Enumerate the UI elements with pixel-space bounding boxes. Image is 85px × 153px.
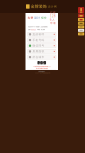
button[interactable]: Offer (78, 14, 84, 17)
staticText: 已服务 (27, 29, 30, 30)
staticText: 查看装修案例 > (38, 70, 45, 72)
button[interactable]: Promotion banner (78, 7, 84, 14)
staticText: * 我们承诺您的信息将被严格保密，仅 (33, 66, 50, 67)
staticText: 86,420 (31, 29, 36, 30)
staticText: 户家庭，省心省钱 (37, 29, 45, 30)
staticText: 报价 (41, 16, 47, 20)
staticText: 所在城市 (32, 55, 44, 59)
staticText: 微信同号 (32, 44, 44, 47)
staticText: 设计 (34, 16, 40, 20)
staticText: 您的称呼 (32, 33, 44, 36)
button[interactable]: 手机号码 (27, 38, 56, 42)
staticText: 免费申请 (39, 59, 45, 66)
staticText: 用于本次免费设计报价服务 (36, 68, 48, 69)
button[interactable]: Coupon (78, 18, 84, 21)
button[interactable]: Gift (78, 22, 84, 25)
staticText: 设计网 (48, 5, 57, 8)
button[interactable]: 微信同号 (27, 43, 56, 48)
staticText: 房屋面积 (32, 50, 44, 53)
staticText: Copyright © 金牌装饰设计网 (35, 72, 50, 74)
button[interactable]: 免费申请 (37, 61, 46, 64)
staticText: 免费 (27, 16, 33, 20)
button[interactable]: 查看装修案例 > (27, 70, 56, 73)
staticText: 专业设计师一对一为您服务，三套方案免费出 (27, 26, 47, 28)
button[interactable]: More (78, 29, 84, 32)
staticText: 金牌装饰 (31, 4, 47, 9)
staticText: 手机号码 (32, 38, 44, 42)
button[interactable]: Top (78, 32, 84, 35)
button[interactable]: 房屋面积 (27, 49, 56, 54)
staticText: 已有1286人申请 (50, 11, 56, 25)
button[interactable]: 所在城市 (27, 55, 56, 59)
button[interactable]: Deal (78, 25, 84, 28)
button[interactable]: 金牌装饰 (26, 4, 57, 9)
button[interactable]: 您的称呼 (27, 32, 56, 36)
